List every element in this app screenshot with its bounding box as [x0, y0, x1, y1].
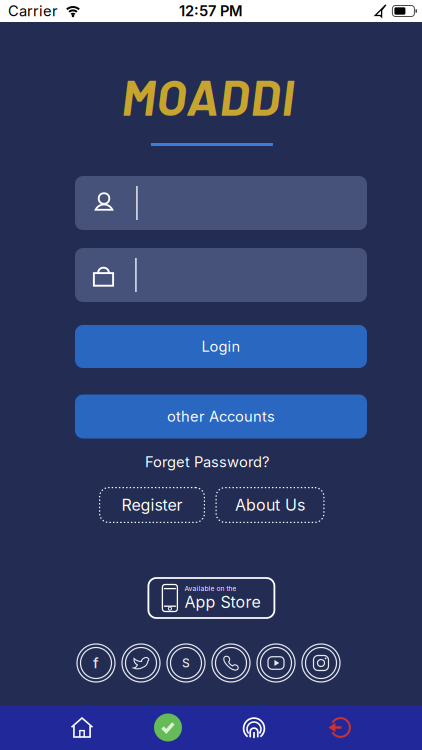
staticText: About Us [235, 496, 305, 514]
staticText: 12:57 PM [179, 2, 243, 20]
button[interactable]: WhatsApp [212, 644, 250, 682]
button[interactable]: Verify [125, 705, 211, 749]
staticText: Login [201, 338, 240, 355]
button[interactable]: Twitter [122, 644, 160, 682]
button[interactable]: Login [75, 325, 367, 368]
button[interactable]: Home [39, 705, 125, 749]
button[interactable]: Register [99, 487, 205, 523]
button[interactable]: other Accounts [75, 394, 367, 438]
button[interactable]: Forget Password? [145, 453, 269, 471]
staticText: Forget Password? [145, 453, 269, 471]
staticText: App Store [184, 592, 260, 611]
button[interactable]: Password [75, 248, 367, 302]
button[interactable]: Facebook [77, 644, 115, 682]
button[interactable]: Skype [167, 644, 205, 682]
button[interactable]: About Us [215, 487, 324, 523]
button[interactable]: Username [75, 176, 367, 230]
button[interactable]: YouTube [257, 644, 295, 682]
staticText: Available on the [184, 585, 236, 592]
staticText: MOADDI [121, 66, 294, 126]
staticText: other Accounts [167, 408, 275, 425]
staticText: f [93, 654, 99, 672]
staticText: Register [121, 496, 182, 514]
staticText: Carrier [8, 2, 58, 20]
button[interactable]: Available on the App Store [148, 578, 274, 618]
button[interactable]: Fingerprint login [211, 705, 297, 749]
button[interactable]: Instagram [302, 644, 340, 682]
button[interactable]: Exit [297, 705, 383, 749]
staticText: S [182, 656, 190, 670]
